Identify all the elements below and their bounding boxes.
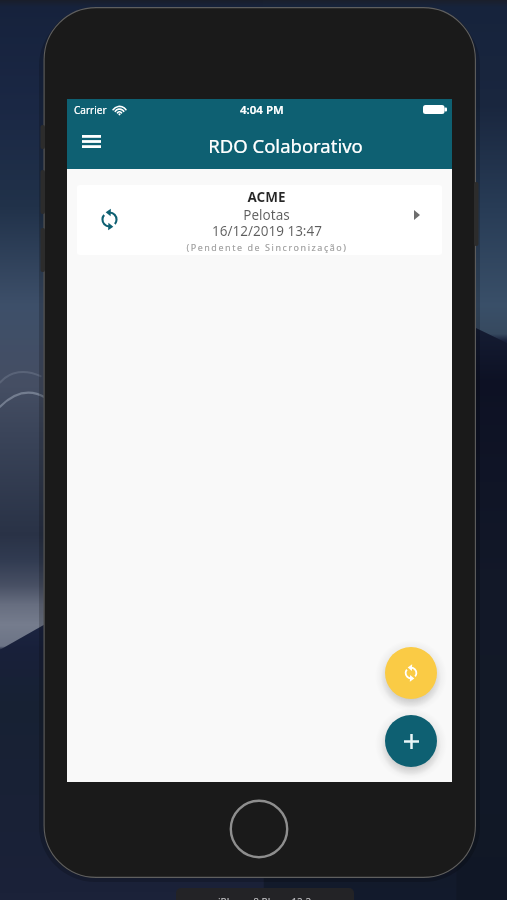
staticText: Pelotas — [243, 206, 290, 224]
button[interactable]: Sincronizar — [385, 647, 437, 699]
staticText: RDO Colaborativo — [208, 133, 363, 158]
staticText: 4:04 PM — [240, 102, 284, 118]
staticText: ACME — [247, 188, 286, 206]
staticText: 16/12/2019 13:47 — [212, 222, 322, 240]
staticText: iPhone 8 Plus – 12.2 — [218, 895, 312, 900]
button[interactable]: Menu — [69, 120, 113, 162]
button[interactable]: Adicionar — [385, 715, 437, 767]
staticText: Carrier — [74, 103, 107, 117]
staticText: (Pendente de Sincronização) — [186, 241, 348, 253]
button[interactable]: ACME — [77, 185, 442, 255]
